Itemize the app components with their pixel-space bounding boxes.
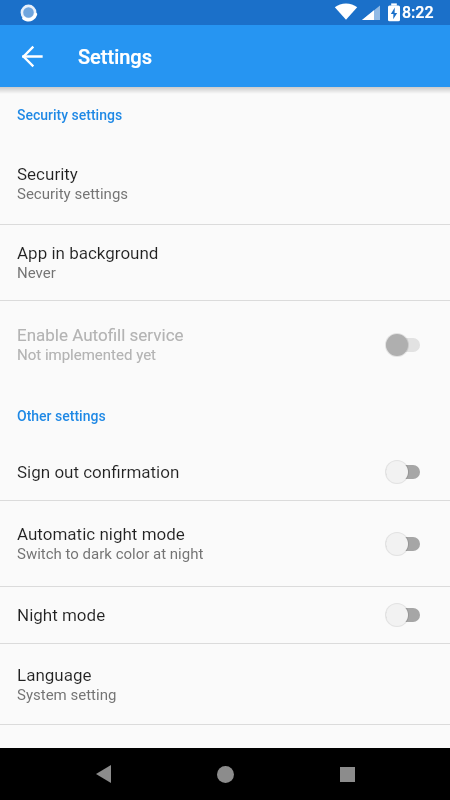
button[interactable]: Sign out confirmation bbox=[0, 444, 450, 500]
button[interactable]: Automatic night mode bbox=[0, 501, 450, 586]
staticText: Other settings bbox=[17, 408, 106, 424]
staticText: Security settings bbox=[17, 107, 123, 123]
button[interactable] bbox=[12, 36, 52, 76]
staticText: Not implemented yet bbox=[17, 346, 157, 364]
staticText: Automatic night mode bbox=[17, 524, 185, 544]
button[interactable] bbox=[199, 748, 251, 800]
staticText: Settings bbox=[78, 45, 153, 68]
button[interactable] bbox=[77, 748, 129, 800]
staticText: Sign out confirmation bbox=[17, 462, 180, 482]
button[interactable]: Language bbox=[0, 644, 450, 724]
staticText: App in background bbox=[17, 243, 159, 263]
staticText: Never bbox=[17, 264, 56, 282]
staticText: 8:22 bbox=[402, 3, 434, 22]
staticText: Security settings bbox=[17, 185, 129, 203]
staticText: Security bbox=[17, 164, 78, 184]
button[interactable]: Night mode bbox=[0, 587, 450, 643]
staticText: Enable Autofill service bbox=[17, 325, 184, 345]
button[interactable] bbox=[321, 748, 373, 800]
staticText: Language bbox=[17, 665, 92, 685]
staticText: Switch to dark color at night bbox=[17, 545, 204, 563]
staticText: Night mode bbox=[17, 605, 106, 625]
staticText: System setting bbox=[17, 686, 117, 704]
button[interactable]: App in background bbox=[0, 225, 450, 300]
button[interactable]: Security bbox=[0, 143, 450, 224]
button[interactable]: Enable Autofill service bbox=[0, 301, 450, 388]
